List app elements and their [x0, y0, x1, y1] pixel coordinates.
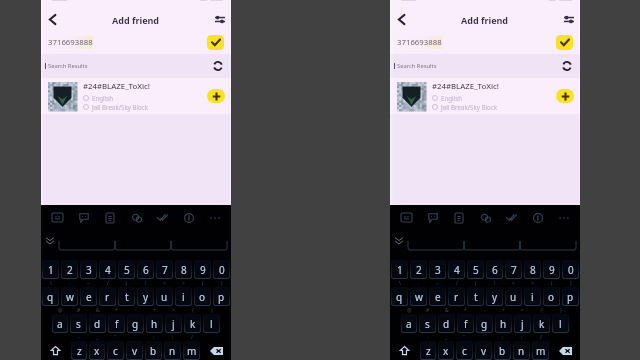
button[interactable]: Refresh — [560, 59, 574, 73]
button[interactable]: : — [493, 333, 512, 360]
button[interactable]: 7 — [504, 252, 523, 279]
button[interactable]: _ — [437, 333, 455, 360]
button[interactable]: Info — [529, 209, 546, 226]
button[interactable]: ~ — [428, 279, 447, 306]
button[interactable]: 9 — [193, 252, 212, 279]
button[interactable]: " — [106, 333, 125, 360]
button[interactable]: > — [174, 279, 193, 306]
button[interactable]: } — [202, 306, 221, 333]
button[interactable]: Filter — [558, 9, 580, 30]
button[interactable]: = — [513, 306, 532, 333]
button[interactable]: ) — [561, 279, 580, 306]
button[interactable]: 3 — [79, 252, 98, 279]
button[interactable]: Back — [41, 9, 63, 30]
button[interactable]: & — [88, 306, 107, 333]
button[interactable]: { — [183, 306, 202, 333]
button[interactable]: Info — [180, 209, 197, 226]
button[interactable]: Backspace — [201, 341, 231, 360]
button[interactable]: \ — [41, 279, 60, 306]
button[interactable]: Filter — [209, 9, 231, 30]
button[interactable]: 0 — [212, 252, 231, 279]
button[interactable]: · — [409, 279, 428, 306]
button[interactable]: # — [69, 306, 88, 333]
button[interactable]: * — [456, 306, 475, 333]
button[interactable]: ~ — [79, 279, 98, 306]
button[interactable]: ; — [512, 333, 531, 360]
button[interactable]: @ — [400, 306, 418, 333]
button[interactable]: + — [145, 306, 164, 333]
button[interactable]: ! — [136, 279, 155, 306]
button[interactable]: Themes — [477, 209, 494, 226]
button[interactable]: · — [60, 279, 79, 306]
button[interactable]: Add friend — [556, 89, 574, 103]
button[interactable] — [171, 241, 227, 250]
button[interactable]: ! — [485, 279, 504, 306]
button[interactable]: | — [466, 279, 485, 306]
button[interactable]: Clipboard — [450, 209, 467, 226]
button[interactable]: & — [437, 306, 456, 333]
button[interactable]: \ — [390, 279, 409, 306]
button[interactable]: } — [551, 306, 570, 333]
button[interactable]: 9 — [542, 252, 561, 279]
button[interactable]: Confirm — [207, 35, 224, 50]
button[interactable]: / — [531, 333, 550, 360]
button[interactable]: 6 — [485, 252, 504, 279]
button[interactable]: Shift — [390, 341, 419, 360]
button[interactable]: 4 — [447, 252, 466, 279]
button[interactable]: - — [475, 306, 494, 333]
button[interactable]: ( — [193, 279, 212, 306]
button[interactable]: 6 — [136, 252, 155, 279]
button[interactable]: More options — [206, 209, 223, 226]
button[interactable]: | — [117, 279, 136, 306]
button[interactable]: 0 — [561, 252, 580, 279]
button[interactable]: < — [155, 279, 174, 306]
button[interactable]: 8 — [174, 252, 193, 279]
button[interactable]: Collapse keyboard — [390, 229, 408, 252]
button[interactable]: 8 — [523, 252, 542, 279]
button[interactable] — [520, 241, 576, 250]
button[interactable]: { — [532, 306, 551, 333]
button[interactable] — [59, 241, 115, 250]
button[interactable]: Back — [390, 9, 412, 30]
button[interactable]: ; — [163, 333, 182, 360]
button[interactable]: Clipboard — [101, 209, 118, 226]
button[interactable]: Collapse keyboard — [41, 229, 59, 252]
button[interactable]: ' — [125, 333, 144, 360]
button[interactable]: Spell check — [503, 209, 520, 226]
button[interactable]: 5 — [117, 252, 136, 279]
button[interactable]: : — [144, 333, 163, 360]
button[interactable]: Translate — [398, 209, 415, 226]
button[interactable]: More options — [555, 209, 572, 226]
button[interactable]: 1 — [41, 252, 60, 279]
button[interactable]: + — [494, 306, 513, 333]
button[interactable] — [408, 241, 464, 250]
button[interactable] — [115, 241, 171, 250]
button[interactable]: * — [107, 306, 126, 333]
button[interactable]: Stickers — [424, 209, 441, 226]
button[interactable]: Refresh — [211, 59, 225, 73]
button[interactable]: " — [455, 333, 474, 360]
button[interactable]: # — [418, 306, 437, 333]
button[interactable]: 7 — [155, 252, 174, 279]
button[interactable]: - — [126, 306, 145, 333]
button[interactable] — [464, 241, 520, 250]
button[interactable]: ( — [542, 279, 561, 306]
button[interactable]: 4 — [98, 252, 117, 279]
button[interactable]: 2 — [60, 252, 79, 279]
button[interactable]: Shift — [41, 341, 70, 360]
button[interactable]: _ — [88, 333, 106, 360]
button[interactable]: = — [164, 306, 183, 333]
button[interactable]: ) — [212, 279, 231, 306]
button[interactable]: / — [447, 279, 466, 306]
button[interactable]: / — [98, 279, 117, 306]
button[interactable]: Backspace — [550, 341, 580, 360]
button[interactable]: Stickers — [75, 209, 92, 226]
button[interactable]: < — [504, 279, 523, 306]
button[interactable]: Add friend — [207, 89, 225, 103]
button[interactable]: Themes — [128, 209, 145, 226]
button[interactable]: / — [182, 333, 201, 360]
button[interactable]: 5 — [466, 252, 485, 279]
button[interactable]: #24#BLAZE_ToXic! — [390, 78, 580, 114]
button[interactable]: ' — [474, 333, 493, 360]
button[interactable]: #24#BLAZE_ToXic! — [41, 78, 231, 114]
